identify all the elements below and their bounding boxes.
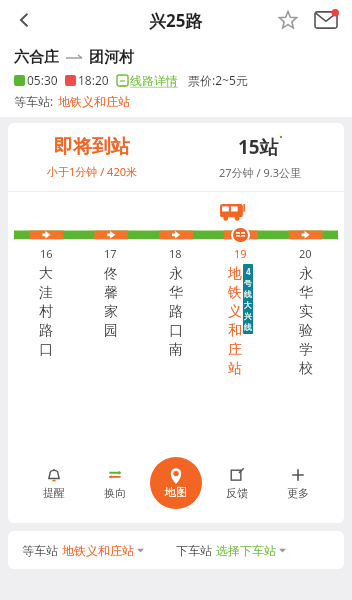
staticText: 永 xyxy=(299,265,313,283)
staticText: 16 xyxy=(40,246,53,261)
staticText: 校 xyxy=(299,360,313,378)
staticText: 六合庄 xyxy=(14,48,59,67)
staticText: 华 xyxy=(299,284,313,302)
staticText: 票价:2~5元 xyxy=(188,72,248,88)
staticText: 地铁义和庄站 xyxy=(62,543,134,558)
staticText: 大 xyxy=(39,265,53,283)
staticText: 兴25路 xyxy=(149,9,203,32)
staticText: 家 xyxy=(104,303,118,321)
staticText: 地 xyxy=(228,265,242,283)
staticText: 地铁义和庄站 xyxy=(58,94,130,109)
staticText: 南 xyxy=(169,341,183,359)
staticText: 和 xyxy=(228,322,242,340)
staticText: 等车站: xyxy=(14,93,54,109)
button[interactable]: 18 xyxy=(143,246,208,359)
staticText: 地图 xyxy=(165,485,187,499)
staticText: 20 xyxy=(299,246,312,261)
staticText: 馨 xyxy=(104,284,118,302)
staticText: 线 xyxy=(244,289,252,299)
button[interactable]: Favorite xyxy=(272,4,304,36)
button[interactable]: 19 xyxy=(208,246,273,378)
staticText: 选择下车站 xyxy=(216,543,276,558)
staticText: 佟 xyxy=(104,265,118,283)
staticText: 团河村 xyxy=(89,48,134,67)
staticText: 庄 xyxy=(228,341,242,359)
staticText: 19 xyxy=(234,246,247,261)
button[interactable]: 16 xyxy=(14,246,78,359)
button[interactable]: 更多 xyxy=(267,461,328,506)
button[interactable]: Messages xyxy=(310,4,342,36)
staticText: 永 xyxy=(169,265,183,283)
staticText: 路 xyxy=(39,322,53,340)
button[interactable]: 线路详情 xyxy=(117,73,178,88)
staticText: 15站 xyxy=(238,134,279,160)
button[interactable]: 等车站 xyxy=(8,531,176,569)
staticText: 即将到站 xyxy=(54,135,130,159)
staticText: 路 xyxy=(169,303,183,321)
staticText: 号 xyxy=(244,278,252,288)
staticText: 口 xyxy=(39,341,53,359)
staticText: 27分钟 / 9.3公里 xyxy=(219,165,301,180)
staticText: 大 xyxy=(244,300,252,310)
staticText: 铁 xyxy=(228,284,242,302)
staticText: 验 xyxy=(299,322,313,340)
staticText: 口 xyxy=(169,322,183,340)
button[interactable]: 即将到站 xyxy=(8,123,176,191)
button[interactable]: 提醒 xyxy=(24,461,84,506)
button[interactable]: 15站 xyxy=(176,123,344,191)
staticText: 义 xyxy=(228,303,242,321)
button[interactable]: 反馈 xyxy=(206,461,267,506)
button[interactable]: 下车站 xyxy=(176,531,344,569)
staticText: 17 xyxy=(104,246,117,261)
staticText: 4 xyxy=(246,266,251,277)
staticText: 线路详情 xyxy=(130,73,178,88)
staticText: 小于1分钟 / 420米 xyxy=(47,164,137,179)
staticText: 村 xyxy=(39,303,53,321)
staticText: 反馈 xyxy=(226,486,248,500)
button[interactable]: Back xyxy=(4,0,44,40)
button[interactable]: 地图 xyxy=(150,457,202,509)
staticText: 05:30 xyxy=(27,72,58,88)
staticText: 学 xyxy=(299,341,313,359)
staticText: 洼 xyxy=(39,284,53,302)
staticText: 线 xyxy=(244,322,252,332)
staticText: 站 xyxy=(228,360,242,378)
button[interactable]: 17 xyxy=(78,246,143,340)
staticText: 华 xyxy=(169,284,183,302)
staticText: 更多 xyxy=(287,486,309,500)
staticText: 18:20 xyxy=(78,72,109,88)
staticText: 兴 xyxy=(244,311,252,321)
staticText: 换向 xyxy=(104,486,126,500)
button[interactable]: 20 xyxy=(273,246,338,378)
staticText: 园 xyxy=(104,322,118,340)
staticText: 提醒 xyxy=(43,486,65,500)
staticText: 下车站 xyxy=(176,543,212,558)
staticText: 18 xyxy=(169,246,182,261)
button[interactable]: 换向 xyxy=(84,461,145,506)
staticText: 实 xyxy=(299,303,313,321)
staticText: 等车站 xyxy=(22,543,58,558)
